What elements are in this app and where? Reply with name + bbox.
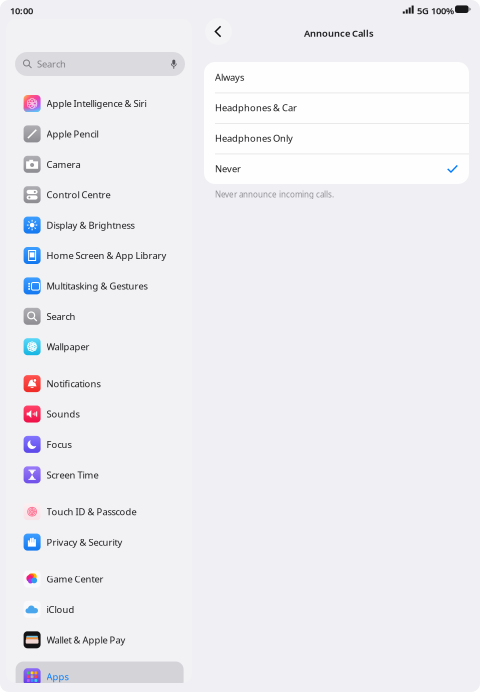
staticText: 100% xyxy=(431,4,454,17)
staticText: Privacy & Security xyxy=(47,536,123,548)
staticText: Search xyxy=(37,58,66,70)
button[interactable]: Apple Pencil xyxy=(16,119,184,149)
staticText: Multitasking & Gestures xyxy=(47,280,148,292)
button[interactable]: iCloud xyxy=(16,594,184,625)
staticText: Wallet & Apple Pay xyxy=(47,634,126,646)
staticText: Game Center xyxy=(47,573,104,585)
button[interactable]: Screen Time xyxy=(16,460,184,490)
button[interactable]: Display & Brightness xyxy=(16,210,184,240)
staticText: Touch ID & Passcode xyxy=(47,505,137,518)
staticText: Announce Calls xyxy=(304,27,374,39)
button[interactable]: Camera xyxy=(16,149,184,179)
button[interactable]: Headphones & Car xyxy=(204,92,469,123)
staticText: Never xyxy=(215,163,241,175)
staticText: 10:00 xyxy=(10,4,33,17)
staticText: Camera xyxy=(47,158,81,170)
staticText: Headphones Only xyxy=(215,132,293,144)
staticText: Control Centre xyxy=(47,188,111,201)
button[interactable]: Headphones Only xyxy=(204,123,469,153)
staticText: Always xyxy=(215,71,244,83)
staticText: Sounds xyxy=(47,408,80,420)
button[interactable]: Search xyxy=(15,52,185,76)
button[interactable]: Home Screen & App Library xyxy=(16,240,184,271)
button[interactable]: Never xyxy=(204,153,469,184)
button[interactable]: Focus xyxy=(16,429,184,460)
staticText: Notifications xyxy=(47,377,101,390)
button[interactable]: Touch ID & Passcode xyxy=(16,496,184,527)
button[interactable]: Always xyxy=(204,62,469,92)
button[interactable]: Notifications xyxy=(16,368,184,399)
staticText: Apps xyxy=(47,670,69,683)
staticText: Apple Pencil xyxy=(47,128,99,140)
staticText: Headphones & Car xyxy=(215,102,297,114)
staticText: Display & Brightness xyxy=(47,219,135,231)
button[interactable]: Apple Intelligence & Siri xyxy=(16,88,184,119)
staticText: Screen Time xyxy=(47,469,99,481)
button[interactable]: Apps xyxy=(16,661,184,692)
button[interactable]: Wallpaper xyxy=(16,331,184,362)
staticText: iCloud xyxy=(47,603,75,616)
staticText: Never announce incoming calls. xyxy=(215,189,334,200)
staticText: Apple Intelligence & Siri xyxy=(47,97,147,110)
staticText: Wallpaper xyxy=(47,340,90,353)
button[interactable]: Multitasking & Gestures xyxy=(16,271,184,301)
button[interactable]: Wallet & Apple Pay xyxy=(16,625,184,655)
button[interactable]: Search xyxy=(16,301,184,331)
button[interactable]: Back xyxy=(205,18,232,45)
staticText: Home Screen & App Library xyxy=(47,249,167,262)
button[interactable]: Sounds xyxy=(16,399,184,429)
button[interactable]: Control Centre xyxy=(16,179,184,210)
button[interactable]: Privacy & Security xyxy=(16,527,184,557)
staticText: 5G xyxy=(417,4,429,17)
staticText: Search xyxy=(47,310,76,322)
button[interactable]: Game Center xyxy=(16,564,184,594)
staticText: Focus xyxy=(47,438,72,451)
